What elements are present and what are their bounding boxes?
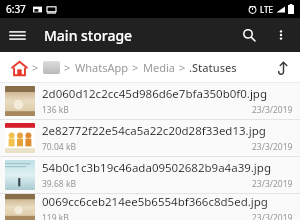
staticText: > [32,60,39,75]
button[interactable]: Open navigation drawer [0,18,34,52]
staticText: 2e82772f22e54ca5a22c20d28f33ed13.jpg [42,123,266,139]
button[interactable]: 54b0c1c3b19c46ada09502682b9a4a39.jpg [0,157,300,194]
staticText: > [64,60,71,75]
staticText: 39.68 kB [42,178,77,190]
staticText: 136 kB [42,104,69,116]
staticText: 70.04 kB [42,141,77,153]
staticText: LTE [260,4,273,15]
button[interactable]: .Statuses [189,60,237,75]
staticText: 2d060d12c2cc45d986d6e7bfa350b0f0.jpg [42,86,268,102]
staticText: > [179,60,186,75]
button[interactable]: Go up one level [270,55,296,81]
staticText: 0069cc6ceb214ee5b6554bf366c8d5ed.jpg [42,194,268,210]
button[interactable]: Home [8,57,30,79]
staticText: 6:37 [6,2,26,16]
staticText: 23/3/2019 [252,212,293,220]
button[interactable]: Search [232,18,266,52]
staticText: 54b0c1c3b19c46ada09502682b9a4a39.jpg [42,160,271,176]
button[interactable]: 2d060d12c2cc45d986d6e7bfa350b0f0.jpg [0,83,300,120]
staticText: .Statuses [189,60,237,75]
staticText: Media [143,60,175,75]
staticText: 23/3/2019 [252,178,293,190]
staticText: WhatsApp [75,60,128,75]
button[interactable]: 2e82772f22e54ca5a22c20d28f33ed13.jpg [0,120,300,157]
staticText: > [132,60,139,75]
staticText: Main storage [44,26,133,45]
staticText: 119 kB [42,212,69,220]
button[interactable]: Media [143,60,175,75]
staticText: 23/3/2019 [252,104,293,116]
staticText: 23/3/2019 [252,141,293,153]
button[interactable]: Main storage [43,61,60,74]
button[interactable]: More options [266,20,296,50]
button[interactable]: WhatsApp [75,60,128,75]
button[interactable]: 0069cc6ceb214ee5b6554bf366c8d5ed.jpg [0,194,300,220]
